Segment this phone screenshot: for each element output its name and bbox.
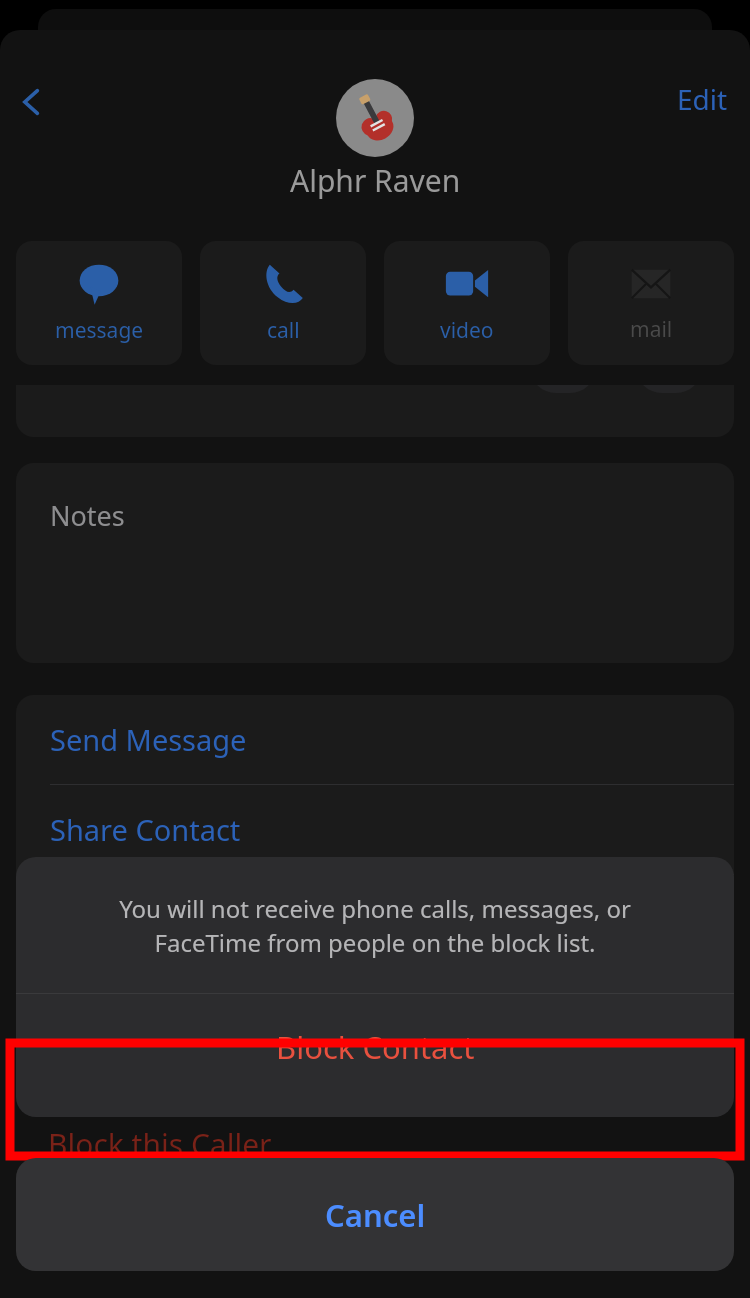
button[interactable]: Share Contact — [16, 785, 734, 874]
staticText: mail — [630, 315, 673, 344]
staticText: Send Message — [50, 720, 247, 759]
staticText: Block Contact — [276, 1026, 475, 1068]
button[interactable]: Notes — [16, 463, 734, 663]
staticText: Edit — [677, 80, 728, 118]
staticText: message — [55, 316, 144, 345]
button[interactable] — [336, 79, 414, 157]
button[interactable]: message — [16, 241, 182, 365]
staticText: Share Contact — [50, 810, 241, 849]
button[interactable]: Cancel — [16, 1158, 734, 1271]
staticText: Add to Favorites — [50, 900, 272, 939]
staticText: video — [440, 316, 494, 345]
button[interactable]: call — [200, 241, 366, 365]
button[interactable]: Add to Favorites — [16, 875, 734, 964]
staticText: Notes — [50, 497, 125, 534]
staticText: Alphr Raven — [290, 160, 461, 201]
button[interactable]: Back — [4, 74, 60, 130]
button[interactable]: mail — [568, 241, 734, 365]
button[interactable]: Send Message — [16, 695, 734, 784]
staticText: You will not receive phone calls, messag… — [119, 892, 631, 959]
button[interactable]: Block Contact — [16, 994, 734, 1100]
button[interactable]: video — [384, 241, 550, 365]
button[interactable]: Edit — [665, 74, 740, 124]
staticText: call — [267, 316, 300, 345]
staticText: Block this Caller — [48, 1124, 272, 1165]
staticText: Cancel — [325, 1194, 426, 1236]
